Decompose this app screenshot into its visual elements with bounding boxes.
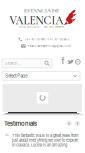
button[interactable]: Previous testimonial [66,120,72,126]
staticText: ESTANCIA DE [24,7,59,14]
button[interactable]: 040 901 125 7987 / 040 901 125 8803 [18,37,69,42]
staticText: Select Page [5,73,27,78]
staticText: Search ... [5,61,21,66]
button[interactable]: Facebook [60,58,65,65]
button[interactable]: estanciadevalencia@gmail.com [21,44,71,48]
staticText: estanciadevalencia@gmail.com [28,44,71,48]
staticText: VALENCIA [9,14,63,28]
button[interactable]: Google Plus [75,59,81,65]
staticText: HOTEL BOUTIQUE · BED AND BREAKFAST [19,26,64,28]
staticText: This fantastic B&B is a great walk from … [12,133,79,147]
staticText: 040 901 125 7987 / 040 901 125 8803 [25,38,69,41]
staticText: Testimonials [4,120,37,127]
staticText: f [61,57,64,66]
button[interactable]: Next testimonial [74,120,80,126]
button[interactable]: Select Page [2,72,80,80]
staticText: “ [5,130,9,143]
button[interactable]: Twitter [67,59,74,64]
button[interactable]: Search ... [2,59,52,68]
